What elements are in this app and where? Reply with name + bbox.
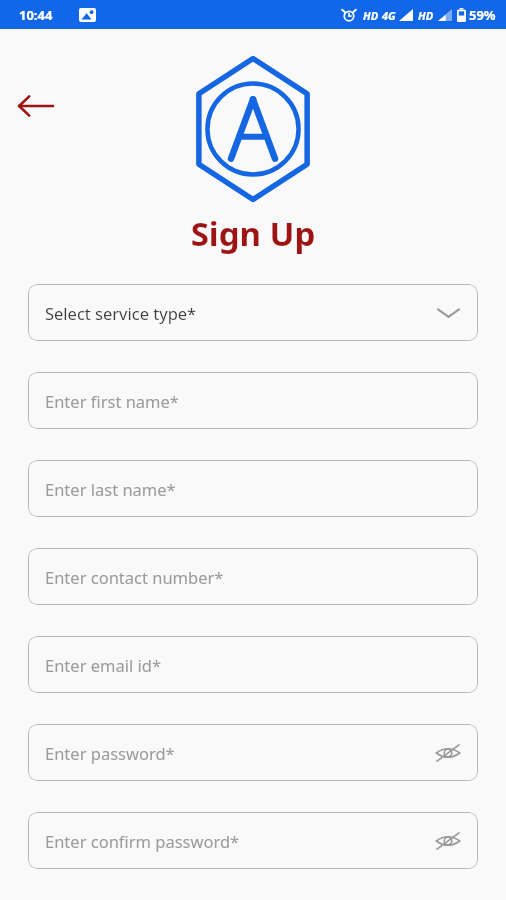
button[interactable]: Show password	[432, 825, 464, 857]
staticText: Select service type*	[45, 302, 197, 324]
button[interactable]: Enter contact number*	[28, 548, 478, 605]
staticText: HD	[363, 8, 379, 23]
staticText: Enter email id*	[45, 654, 162, 676]
button[interactable]: Enter last name*	[28, 460, 478, 517]
staticText: Enter confirm password*	[45, 830, 240, 852]
button[interactable]: Back	[13, 84, 57, 128]
staticText: Sign Up	[0, 211, 506, 256]
staticText: HD	[418, 8, 434, 23]
staticText: 4G	[382, 8, 396, 23]
staticText: Enter first name*	[45, 390, 179, 412]
button[interactable]: Select service type*	[28, 284, 478, 341]
button[interactable]: Enter password*	[28, 724, 478, 781]
staticText: 10:44	[19, 6, 53, 24]
button[interactable]: Open service type dropdown	[434, 299, 462, 327]
staticText: Enter password*	[45, 742, 175, 764]
button[interactable]: Show password	[432, 737, 464, 769]
staticText: Enter last name*	[45, 478, 176, 500]
button[interactable]: Enter email id*	[28, 636, 478, 693]
staticText: 59%	[469, 6, 496, 24]
button[interactable]: Enter confirm password*	[28, 812, 478, 869]
staticText: Enter contact number*	[45, 566, 224, 588]
button[interactable]: Enter first name*	[28, 372, 478, 429]
